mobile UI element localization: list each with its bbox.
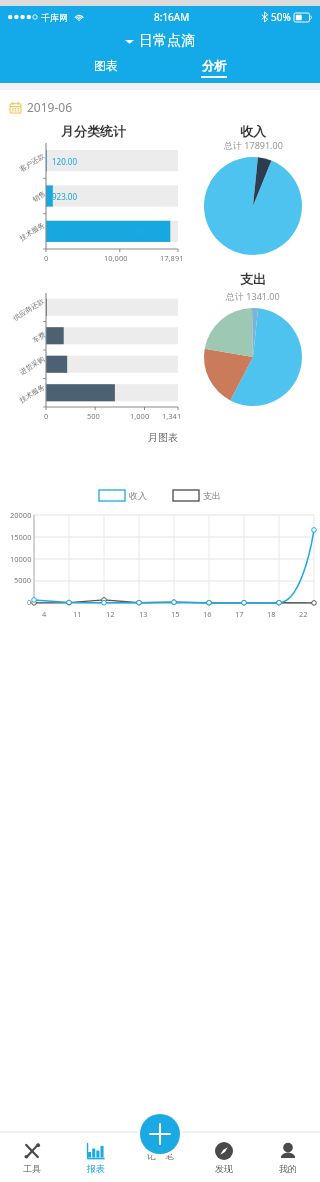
button[interactable]: 报表 [64, 1134, 128, 1182]
staticText: 923.00 [52, 191, 78, 202]
staticText: 千库网 [41, 12, 68, 23]
staticText: 16 [203, 609, 212, 619]
staticText: 50% [271, 10, 291, 24]
button[interactable]: 分析 [193, 56, 235, 80]
staticText: 13 [139, 609, 148, 619]
button[interactable]: 支出 [171, 488, 223, 503]
staticText: 18 [267, 609, 276, 619]
staticText: 我的 [279, 1163, 297, 1174]
staticText: 120.00 [52, 156, 78, 167]
staticText: 0 [27, 597, 32, 607]
staticText: 17 [235, 609, 244, 619]
staticText: 供应商还款 [11, 296, 46, 323]
staticText: 车费 [31, 330, 47, 345]
staticText: 支出 [203, 490, 221, 501]
staticText: 销售 [31, 189, 47, 204]
staticText: 1,000 [130, 411, 150, 421]
staticText: 10000 [10, 554, 32, 564]
staticText: 5000 [14, 575, 32, 585]
staticText: 0 [44, 411, 49, 421]
button[interactable]: 记一笔 添加 [137, 1111, 183, 1157]
staticText: 4 [42, 609, 47, 619]
staticText: 10,000 [104, 253, 128, 263]
staticText: 总计 1341.00 [226, 290, 280, 302]
button[interactable]: 工具 [0, 1134, 64, 1182]
staticText: 15 [171, 609, 180, 619]
staticText: 客户还款 [18, 151, 46, 174]
staticText: 0 [44, 253, 49, 263]
staticText: 20000 [10, 510, 32, 520]
button[interactable]: 我的 [256, 1134, 320, 1182]
button[interactable]: 收入 [97, 488, 149, 503]
staticText: 记一笔 [147, 1150, 174, 1161]
staticText: 500 [87, 411, 100, 421]
staticText: 1,341 [162, 411, 182, 421]
button[interactable]: 记一笔 [147, 1150, 174, 1166]
staticText: 总计 17891.00 [224, 139, 283, 151]
staticText: 分析 [202, 58, 226, 73]
staticText: 22 [299, 609, 308, 619]
button[interactable]: 发现 [192, 1134, 256, 1182]
staticText: 技术服务 [18, 220, 46, 243]
staticText: 12 [106, 609, 115, 619]
staticText: 月图表 [148, 431, 178, 444]
staticText: 收入 [240, 123, 266, 139]
staticText: 发现 [215, 1163, 233, 1174]
staticText: 支出 [240, 271, 266, 287]
staticText: 报表 [87, 1163, 105, 1174]
staticText: 收入 [129, 490, 147, 501]
staticText: 图表 [94, 58, 118, 73]
staticText: 技术服务 [18, 382, 46, 405]
staticText: 2019-06 [27, 99, 73, 115]
staticText: 8:16AM [154, 10, 190, 24]
staticText: 月分类统计 [61, 123, 126, 139]
staticText: 工具 [23, 1163, 41, 1174]
staticText: 15000 [10, 532, 32, 542]
staticText: 日常点滴 [139, 32, 195, 50]
button[interactable]: 图表 [85, 56, 127, 78]
staticText: 17,891 [160, 253, 184, 263]
staticText: 11 [73, 609, 82, 619]
staticText: 进货采购 [18, 354, 46, 377]
